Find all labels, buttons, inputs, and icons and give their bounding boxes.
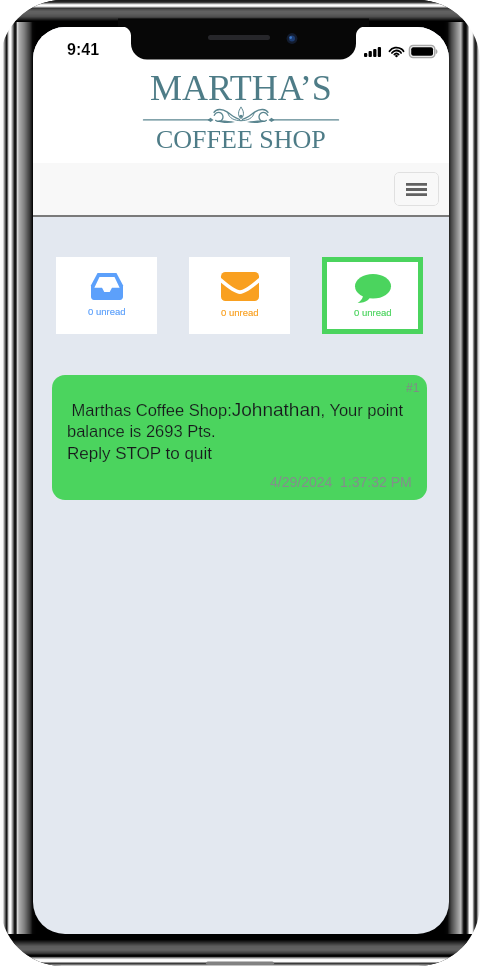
button[interactable]: 0 unread [327,262,418,329]
staticText: 0 unread [221,307,259,318]
button[interactable]: 0 unread [189,257,290,334]
button[interactable]: #1 [52,375,427,500]
staticText: Reply STOP to quit [67,444,212,463]
button[interactable]: 0 unread [56,257,157,334]
staticText: MARTHA’S [150,68,332,108]
staticText: 4/29/2024 1:37:32 PM [270,474,412,490]
staticText: 9:41 [67,41,100,59]
staticText: #1 [406,381,420,394]
staticText: 0 unread [354,307,392,318]
staticText: COFFEE SHOP [156,125,326,154]
staticText: Marthas Coffee Shop:Johnathan, Your poin… [67,399,422,441]
button[interactable]: Menu [394,172,439,206]
staticText: 0 unread [88,306,126,317]
